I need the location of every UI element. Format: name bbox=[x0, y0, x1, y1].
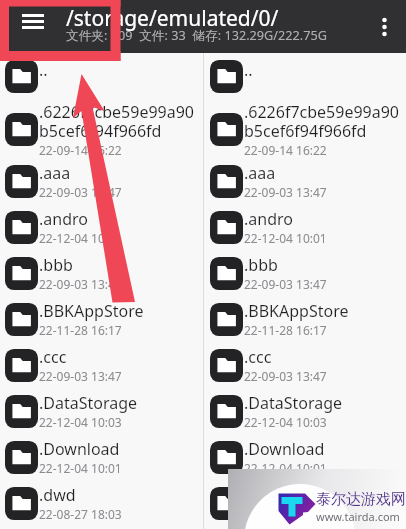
staticText: 22-08-27 18:03 bbox=[244, 506, 327, 522]
staticText: .bbb bbox=[244, 254, 278, 276]
staticText: www.tairda.com bbox=[316, 509, 400, 524]
staticText: 22-08-27 18:03 bbox=[39, 506, 122, 522]
button[interactable]: .6226f7cbe59e99a90 b5cef6f94f966fd bbox=[204, 100, 406, 158]
button[interactable]: .andro bbox=[0, 204, 203, 250]
staticText: 22-12-04 10:01 bbox=[39, 460, 122, 476]
staticText: 22-12-04 10:03 bbox=[39, 414, 122, 430]
button[interactable]: .. bbox=[0, 53, 203, 100]
button[interactable]: .bbb bbox=[204, 250, 406, 296]
staticText: 22-09-03 13:47 bbox=[244, 276, 327, 292]
staticText: 文件夹: 109 文件: 33 储存: 132.29G/222.75G bbox=[66, 26, 327, 43]
staticText: .dwd bbox=[244, 484, 281, 506]
button[interactable]: .dwd bbox=[0, 480, 203, 526]
staticText: 22-12-04 10:01 bbox=[244, 230, 327, 246]
button[interactable]: .andro bbox=[204, 204, 406, 250]
button[interactable]: More options bbox=[362, 0, 406, 53]
staticText: 22-12-04 10:01 bbox=[244, 460, 327, 476]
staticText: .aaa bbox=[244, 162, 276, 184]
button[interactable]: .aaa bbox=[0, 158, 203, 204]
staticText: 22-09-03 13:47 bbox=[39, 184, 122, 200]
button[interactable]: .ccc bbox=[0, 342, 203, 388]
staticText: /storage/emulated/0/ bbox=[66, 4, 279, 33]
button[interactable]: .DataStorage bbox=[204, 388, 406, 434]
button[interactable]: .Download bbox=[0, 434, 203, 480]
staticText: .bbb bbox=[39, 254, 73, 276]
staticText: .ccc bbox=[244, 346, 272, 368]
staticText: .BBKAppStore bbox=[39, 300, 144, 322]
staticText: 22-09-14 16:22 bbox=[244, 142, 327, 158]
staticText: 22-09-14 16:22 bbox=[39, 142, 122, 158]
staticText: .aaa bbox=[39, 162, 71, 184]
staticText: 22-12-04 10:03 bbox=[244, 414, 327, 430]
button[interactable]: .DataStorage bbox=[0, 388, 203, 434]
staticText: .Download bbox=[244, 438, 325, 460]
staticText: 22-09-03 13:47 bbox=[39, 368, 122, 384]
staticText: .DataStorage bbox=[244, 392, 343, 414]
staticText: .6226f7cbe59e99a90 b5cef6f94f966fd bbox=[244, 101, 400, 142]
staticText: 22-09-03 13:47 bbox=[39, 276, 122, 292]
button[interactable]: .BBKAppStore bbox=[204, 296, 406, 342]
staticText: .DataStorage bbox=[39, 392, 138, 414]
staticText: .. bbox=[244, 59, 253, 81]
staticText: .6226f7cbe59e99a90 b5cef6f94f966fd bbox=[39, 101, 195, 142]
staticText: .andro bbox=[244, 208, 293, 230]
staticText: 22-11-28 16:17 bbox=[244, 322, 327, 338]
staticText: .Download bbox=[39, 438, 120, 460]
staticText: .BBKAppStore bbox=[244, 300, 349, 322]
staticText: .. bbox=[39, 59, 48, 81]
staticText: .dwd bbox=[39, 484, 76, 506]
staticText: .ccc bbox=[39, 346, 67, 368]
button[interactable]: .ccc bbox=[204, 342, 406, 388]
staticText: 22-12-04 10:01 bbox=[39, 230, 122, 246]
button[interactable]: .Download bbox=[204, 434, 406, 480]
button[interactable]: .6226f7cbe59e99a90 b5cef6f94f966fd bbox=[0, 100, 203, 158]
staticText: 22-11-28 16:17 bbox=[39, 322, 122, 338]
button[interactable]: .. bbox=[204, 53, 406, 100]
button[interactable]: .BBKAppStore bbox=[0, 296, 203, 342]
staticText: 22-09-03 13:47 bbox=[244, 184, 327, 200]
button[interactable]: .aaa bbox=[204, 158, 406, 204]
button[interactable]: Menu bbox=[0, 0, 66, 53]
staticText: 22-09-03 13:47 bbox=[244, 368, 327, 384]
staticText: .andro bbox=[39, 208, 88, 230]
button[interactable]: .bbb bbox=[0, 250, 203, 296]
button[interactable]: .dwd bbox=[204, 480, 406, 526]
staticText: 泰尔达游戏网 bbox=[316, 490, 406, 509]
